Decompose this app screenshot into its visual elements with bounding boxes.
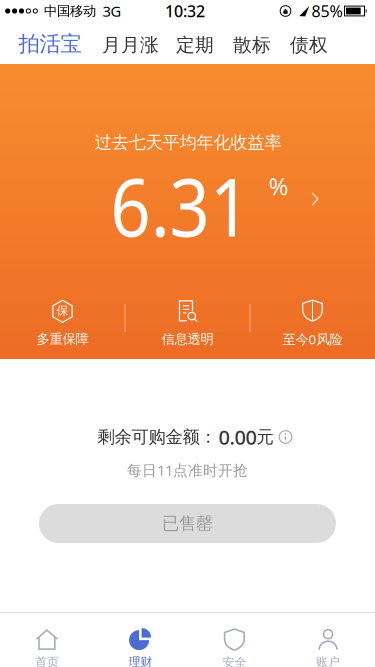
staticText: 10:32 <box>165 0 205 22</box>
staticText: 过去七天平均年化收益率 <box>94 132 281 153</box>
staticText: 首页 <box>35 655 59 667</box>
staticText: 6.31 <box>101 152 260 259</box>
staticText: 定期 <box>176 33 214 56</box>
button[interactable]: 已售罄 <box>39 504 336 543</box>
staticText: 85% <box>311 0 342 22</box>
staticText: 理财 <box>129 655 153 667</box>
button[interactable]: 信息透明 <box>161 300 213 347</box>
staticText: 至今0风险 <box>282 330 342 348</box>
button[interactable]: 定期 <box>176 33 214 56</box>
button[interactable]: 拍活宝 <box>18 31 81 57</box>
staticText: 信息透明 <box>161 331 213 347</box>
staticText: 债权 <box>290 33 328 56</box>
staticText: 拍活宝 <box>18 31 81 57</box>
staticText: 中国移动 <box>44 3 96 19</box>
staticText: 已售罄 <box>162 513 213 534</box>
button[interactable]: 查看详情 <box>311 192 319 206</box>
staticText: 安全 <box>222 655 246 667</box>
staticText: 账户 <box>316 655 340 667</box>
staticText: 3G <box>102 1 121 21</box>
staticText: 0.00 <box>218 424 256 450</box>
staticText: 月月涨 <box>102 33 159 56</box>
button[interactable]: 安全 <box>187 628 281 667</box>
button[interactable]: 说明 <box>273 430 292 444</box>
staticText: 元 <box>256 426 273 448</box>
button[interactable]: 至今0风险 <box>282 299 342 348</box>
button[interactable]: 散标 <box>233 33 271 56</box>
staticText: 多重保障 <box>36 331 88 347</box>
button[interactable]: 保 <box>36 300 88 347</box>
button[interactable]: 债权 <box>290 33 328 56</box>
staticText: 每日11点准时开抢 <box>127 460 248 480</box>
staticText: 剩余可购金额： <box>97 426 216 448</box>
button[interactable]: 账户 <box>281 629 375 667</box>
staticText: % <box>268 170 288 202</box>
staticText: 保 <box>56 303 68 318</box>
button[interactable]: 首页 <box>0 629 94 667</box>
button[interactable]: 理财 <box>94 629 187 667</box>
staticText: 散标 <box>233 33 271 56</box>
button[interactable]: 月月涨 <box>102 33 159 56</box>
